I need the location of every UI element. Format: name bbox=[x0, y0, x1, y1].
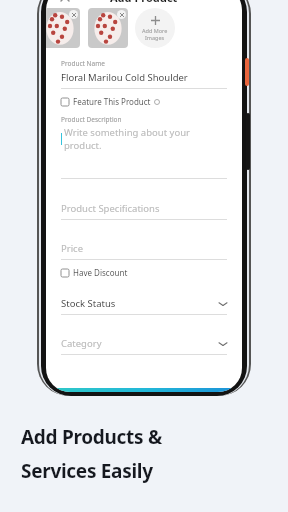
staticText: Write something about your product. bbox=[64, 126, 227, 152]
button[interactable]: Close bbox=[57, 0, 73, 5]
staticText: Category bbox=[61, 337, 102, 350]
staticText: Floral Marilou Cold Shoulder bbox=[61, 71, 188, 84]
staticText: Product Name bbox=[61, 59, 105, 68]
staticText: Add More bbox=[142, 27, 168, 34]
staticText: Add Products & bbox=[21, 424, 162, 450]
staticText: Stock Status bbox=[61, 297, 116, 310]
staticText: Have Discount bbox=[73, 267, 128, 278]
button[interactable]: Remove image bbox=[117, 10, 126, 19]
button[interactable]: Category bbox=[61, 337, 227, 355]
button[interactable]: Stock Status bbox=[61, 297, 227, 315]
staticText: Add Product bbox=[110, 0, 178, 5]
button[interactable]: Remove image bbox=[69, 10, 78, 19]
staticText: Services Easily bbox=[21, 458, 153, 484]
button[interactable]: Feature This Product bbox=[61, 96, 160, 107]
staticText: Feature This Product bbox=[73, 96, 151, 107]
staticText: Product Specifications bbox=[61, 202, 160, 215]
button[interactable]: Add More bbox=[135, 8, 175, 48]
staticText: Images bbox=[145, 34, 165, 41]
staticText: Price bbox=[61, 242, 84, 255]
button[interactable]: Have Discount bbox=[61, 267, 128, 278]
staticText: Product Description bbox=[61, 115, 122, 124]
